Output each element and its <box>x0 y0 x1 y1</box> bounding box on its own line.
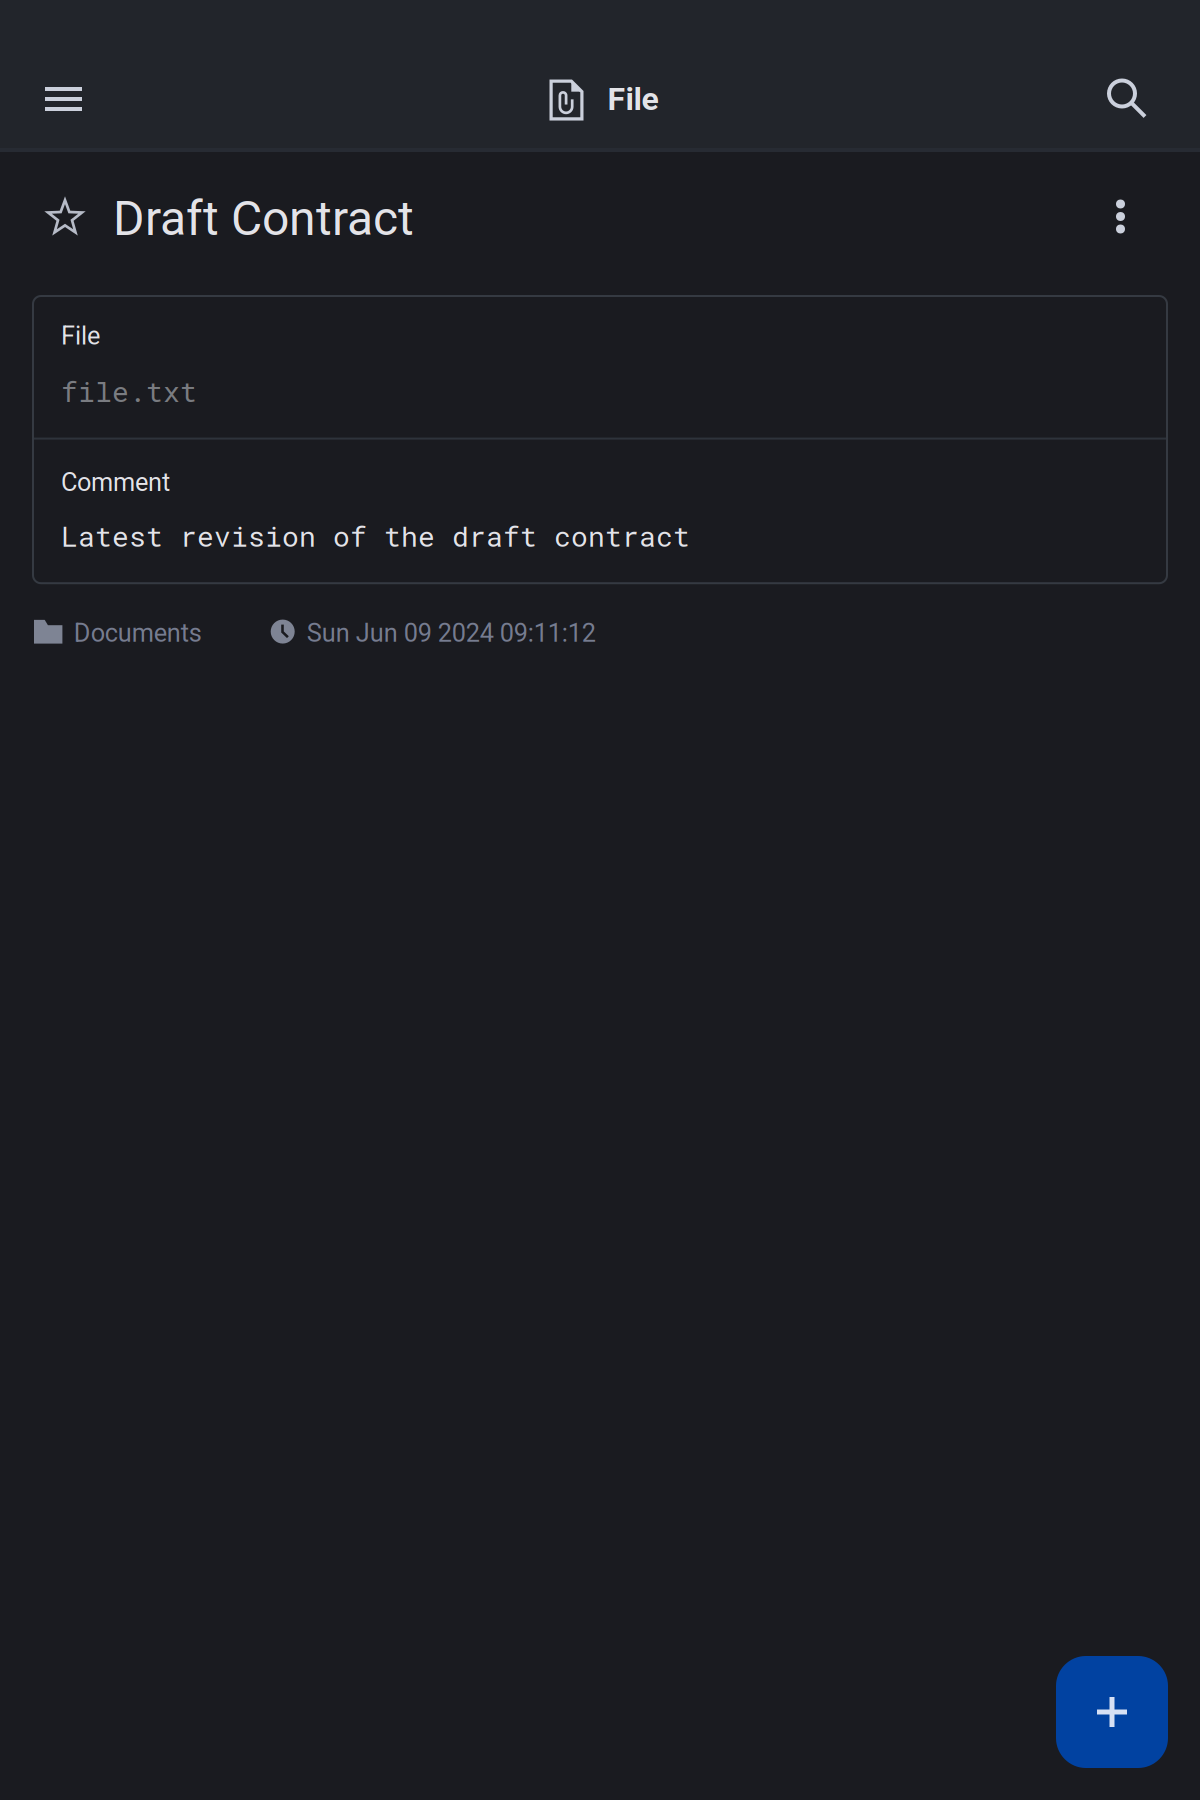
staticText: File <box>607 80 658 118</box>
staticText: Comment <box>61 468 170 497</box>
staticText: File <box>61 321 100 351</box>
button[interactable]: Menu <box>0 61 112 137</box>
staticText: Documents <box>74 618 202 648</box>
staticText: Sun Jun 09 2024 09:11:12 <box>307 618 596 648</box>
staticText: file.txt <box>61 373 197 410</box>
button[interactable]: Add <box>1056 1656 1168 1768</box>
staticText: Latest revision of the draft contract <box>61 517 690 554</box>
button[interactable]: More options <box>1086 175 1200 261</box>
button[interactable]: Favorite <box>0 172 113 265</box>
staticText: Draft Contract <box>113 190 414 247</box>
button[interactable]: Search <box>1077 60 1200 137</box>
